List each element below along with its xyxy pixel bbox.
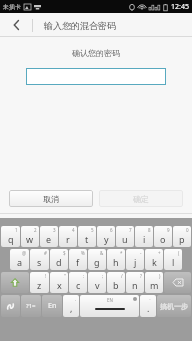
staticText: 搞机一步 xyxy=(160,302,188,311)
staticText: ?1= xyxy=(26,302,36,310)
staticText: - xyxy=(140,250,142,256)
staticText: 8 xyxy=(148,227,151,233)
staticText: i xyxy=(143,233,146,245)
staticText: l xyxy=(172,256,175,268)
staticText: EN xyxy=(107,297,113,303)
staticText: c xyxy=(76,279,81,291)
button[interactable]: ( xyxy=(164,249,182,270)
button[interactable]: / xyxy=(107,272,125,293)
staticText: o xyxy=(160,233,166,245)
staticText: g xyxy=(94,256,100,268)
staticText: ) xyxy=(159,273,161,279)
staticText: 0 xyxy=(186,227,189,233)
staticText: 7 xyxy=(129,227,132,233)
staticText: & xyxy=(100,250,104,256)
button[interactable]: . xyxy=(63,295,79,317)
staticText: 6 xyxy=(110,227,113,233)
staticText: + xyxy=(158,250,161,256)
button[interactable]: : xyxy=(69,272,87,293)
staticText: s xyxy=(37,256,42,268)
staticText: 1 xyxy=(15,227,18,233)
staticText: " xyxy=(64,273,66,279)
button[interactable]: 8 xyxy=(135,226,153,247)
button[interactable]: - xyxy=(126,249,144,270)
button[interactable]: @ xyxy=(10,249,29,270)
button[interactable]: ? xyxy=(126,272,144,293)
button[interactable]: 4 xyxy=(59,226,77,247)
staticText: d xyxy=(56,256,62,268)
staticText: p xyxy=(179,233,185,245)
button[interactable]: 取消 xyxy=(9,190,93,207)
button[interactable]: Emoji xyxy=(1,295,20,317)
staticText: v xyxy=(95,279,100,291)
staticText: 3 xyxy=(53,227,56,233)
staticText: b xyxy=(113,279,119,291)
staticText: , xyxy=(70,302,73,314)
staticText: 确认您的密码 xyxy=(0,48,192,58)
staticText: ? xyxy=(140,273,142,279)
staticText: $ xyxy=(63,250,66,256)
staticText: m xyxy=(150,279,159,291)
staticText: En xyxy=(48,301,57,311)
staticText: 未插卡 xyxy=(3,3,21,11)
staticText: ; xyxy=(102,273,104,279)
staticText: k xyxy=(152,256,157,268)
button[interactable]: 6 xyxy=(97,226,115,247)
staticText: 12:45 xyxy=(171,2,189,12)
button[interactable]: Enter xyxy=(157,295,191,317)
button[interactable]: Shift xyxy=(1,272,29,293)
staticText: 输入您的混合密码 xyxy=(44,20,116,31)
staticText: w xyxy=(26,233,34,245)
staticText: z xyxy=(37,279,42,291)
staticText: 确定 xyxy=(133,194,149,204)
staticText: x xyxy=(57,279,62,291)
button[interactable]: 2 xyxy=(21,226,39,247)
button[interactable]: Back xyxy=(0,13,32,37)
button[interactable]: & xyxy=(88,249,106,270)
button[interactable]: ; xyxy=(88,272,106,293)
staticText: ( xyxy=(178,250,180,256)
staticText: e xyxy=(46,233,52,245)
button[interactable]: 。 xyxy=(140,295,156,317)
staticText: q xyxy=(8,233,14,245)
staticText: 4 xyxy=(72,227,75,233)
button[interactable]: 9 xyxy=(154,226,172,247)
staticText: / xyxy=(121,273,123,279)
staticText: u xyxy=(122,233,128,245)
button[interactable]: " xyxy=(50,272,68,293)
staticText: t xyxy=(85,233,89,245)
staticText: f xyxy=(76,256,80,268)
button[interactable]: 3 xyxy=(40,226,58,247)
button[interactable]: 确定 xyxy=(99,190,183,207)
button[interactable]: En xyxy=(42,295,62,317)
staticText: . xyxy=(75,296,77,302)
button[interactable]: 7 xyxy=(116,226,134,247)
button[interactable]: Space xyxy=(80,295,139,317)
staticText: h xyxy=(113,256,119,268)
staticText: r xyxy=(66,233,70,245)
button[interactable]: 1 xyxy=(1,226,20,247)
staticText: % xyxy=(81,250,85,256)
staticText: j xyxy=(134,256,137,268)
button[interactable]: 0 xyxy=(173,226,191,247)
staticText: * xyxy=(120,250,123,256)
button[interactable]: $ xyxy=(50,249,68,270)
button[interactable]: # xyxy=(30,249,49,270)
button[interactable] xyxy=(26,68,166,85)
staticText: 9 xyxy=(167,227,170,233)
button[interactable]: ?1= xyxy=(21,295,41,317)
button[interactable]: 5 xyxy=(78,226,96,247)
button[interactable]: ! xyxy=(30,272,49,293)
button[interactable]: ) xyxy=(145,272,163,293)
staticText: : xyxy=(83,273,85,279)
staticText: 。 xyxy=(149,296,154,302)
staticText: a xyxy=(17,256,23,268)
staticText: . xyxy=(147,302,150,314)
staticText: 5 xyxy=(91,227,94,233)
staticText: @ xyxy=(22,250,27,256)
staticText: y xyxy=(104,233,109,245)
button[interactable]: % xyxy=(69,249,87,270)
button[interactable]: Backspace xyxy=(164,272,191,293)
button[interactable]: * xyxy=(107,249,125,270)
button[interactable]: + xyxy=(145,249,163,270)
